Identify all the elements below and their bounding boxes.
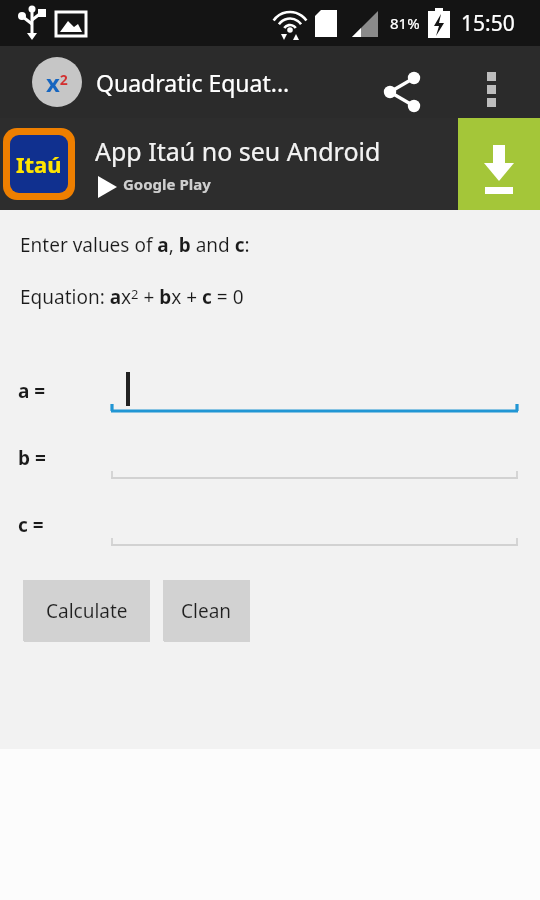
- button[interactable]: a =: [0, 368, 540, 413]
- staticText: Equation: ax2 + bx + c = 0: [20, 284, 244, 310]
- button[interactable]: b =: [0, 435, 540, 480]
- button[interactable]: More options: [468, 58, 516, 106]
- staticText: Enter values of a, b and c:: [20, 232, 250, 258]
- button[interactable]: Install: [458, 118, 540, 210]
- staticText: Google Play: [123, 174, 211, 194]
- button[interactable]: Itaú: [0, 118, 540, 210]
- staticText: b =: [18, 445, 78, 471]
- staticText: c =: [18, 512, 78, 538]
- staticText: 81%: [390, 13, 420, 33]
- staticText: a =: [18, 378, 78, 404]
- staticText: Clean: [181, 598, 232, 624]
- staticText: Calculate: [46, 598, 128, 624]
- button[interactable]: Calculate: [23, 580, 150, 641]
- button[interactable]: c =: [0, 502, 540, 547]
- button[interactable]: Clean: [163, 580, 250, 641]
- staticText: Quadratic Equat...: [96, 67, 290, 98]
- button[interactable]: Share: [374, 58, 422, 106]
- staticText: Itaú: [16, 149, 62, 179]
- staticText: App Itaú no seu Android: [95, 134, 381, 168]
- staticText: 15:50: [461, 9, 515, 38]
- staticText: x2: [46, 66, 68, 99]
